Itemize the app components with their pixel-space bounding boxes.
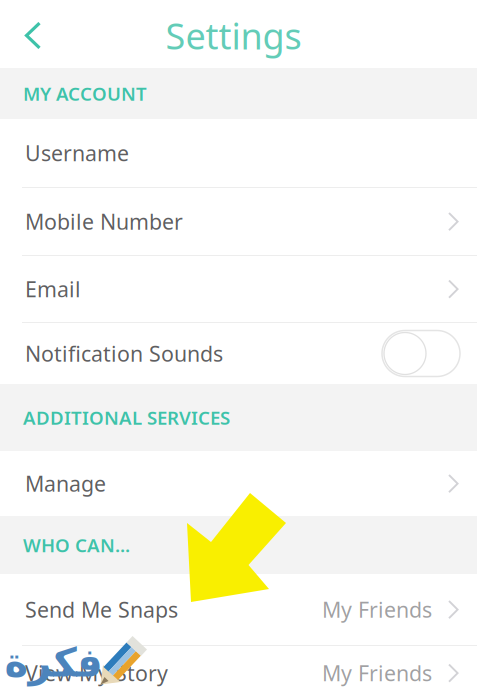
staticText: Notification Sounds <box>25 339 223 368</box>
button[interactable]: Username <box>0 119 477 187</box>
staticText: Email <box>25 275 81 303</box>
button[interactable]: Email <box>0 256 477 322</box>
button[interactable]: Back <box>0 8 66 59</box>
staticText: Settings <box>165 12 301 59</box>
staticText: Username <box>25 139 129 167</box>
staticText: MY ACCOUNT <box>23 81 147 106</box>
staticText: Manage <box>25 469 106 498</box>
button[interactable]: Send Me Snaps <box>0 574 477 645</box>
staticText: My Friends <box>322 659 432 687</box>
staticText: ADDITIONAL SERVICES <box>23 405 230 430</box>
button[interactable]: Notification Sounds <box>0 323 477 384</box>
staticText: Mobile Number <box>25 207 183 236</box>
button[interactable]: Manage <box>0 451 477 516</box>
button[interactable]: View My Story <box>0 646 477 700</box>
staticText: فكرة <box>4 640 102 685</box>
button[interactable]: Mobile Number <box>0 188 477 255</box>
staticText: WHO CAN... <box>23 533 130 557</box>
staticText: My Friends <box>322 595 432 624</box>
staticText: View My Story <box>25 659 168 687</box>
staticText: Send Me Snaps <box>25 595 178 624</box>
